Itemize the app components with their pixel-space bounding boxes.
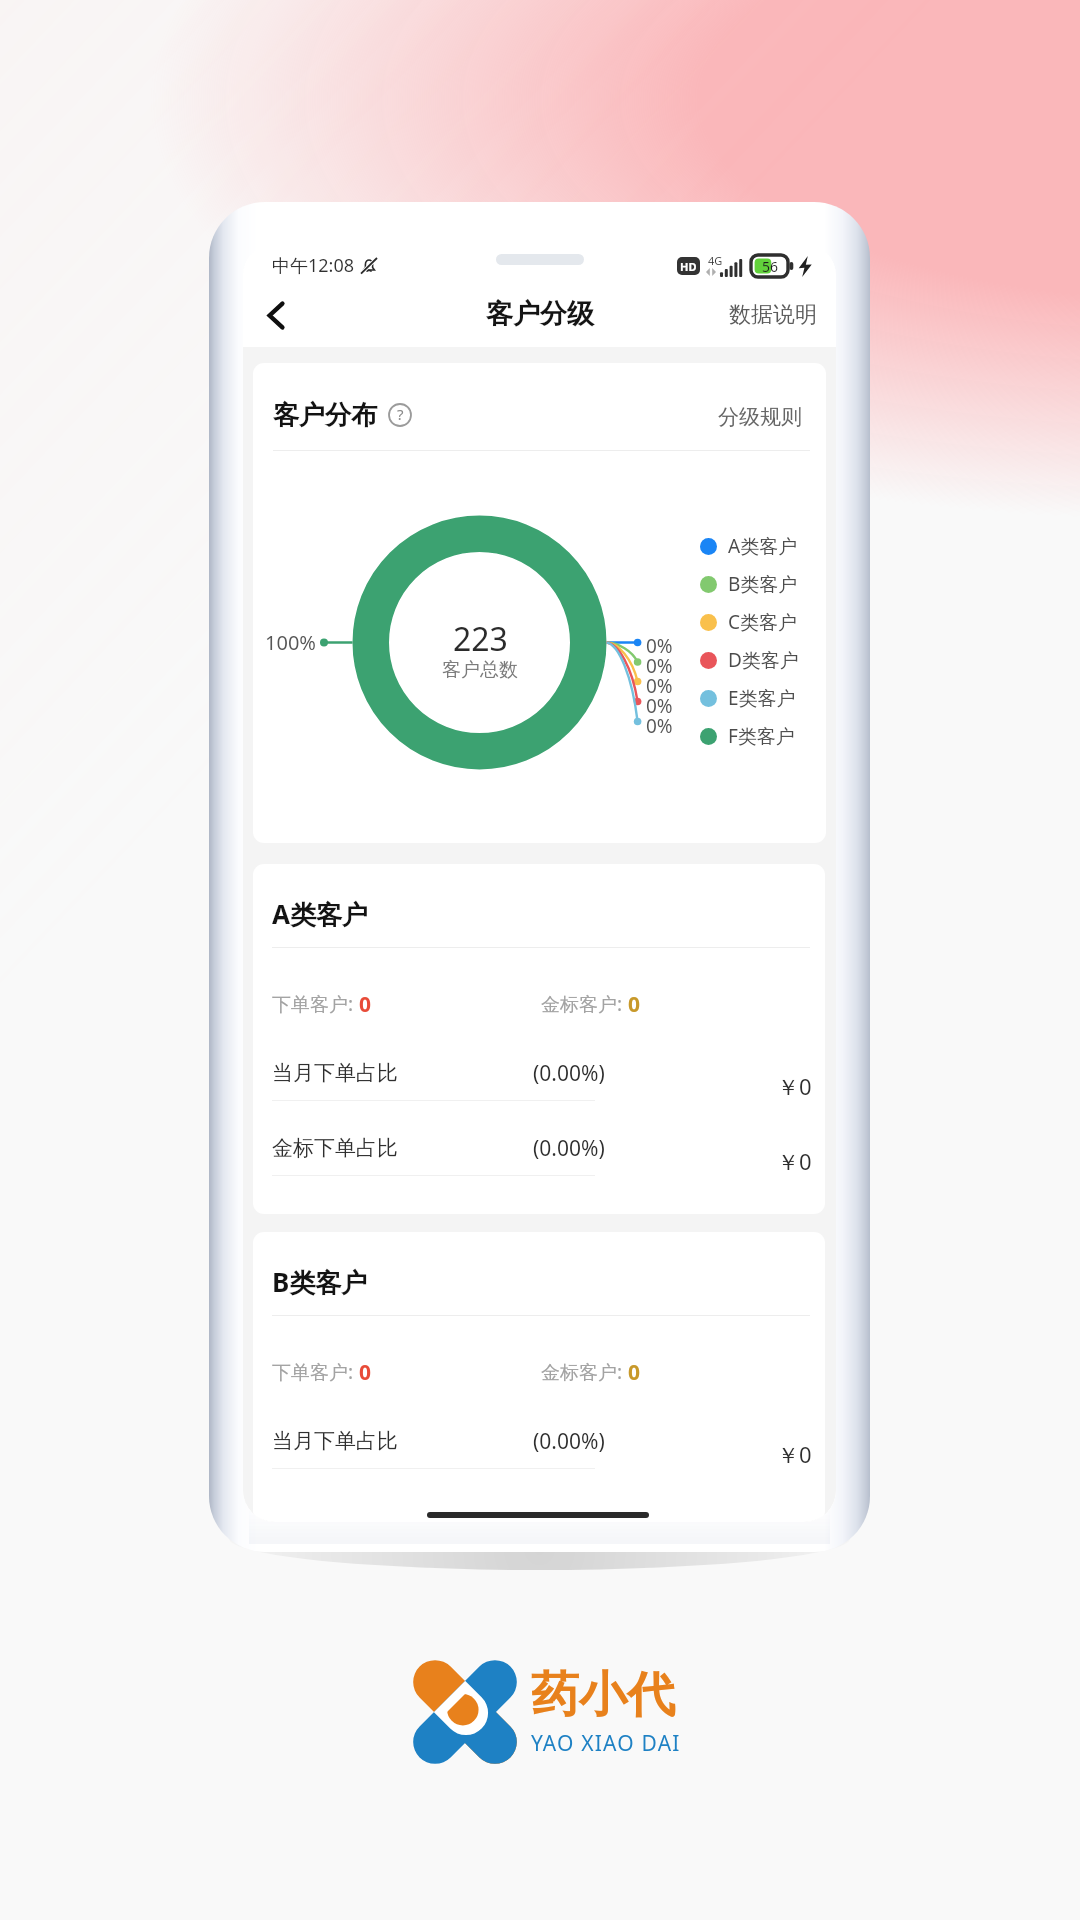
staticText: 金标客户: [541,1359,628,1385]
staticText: C类客户 [728,609,798,635]
staticText: 0 [359,990,372,1018]
staticText: 金标下单占比 [272,1135,398,1161]
staticText: YAO XIAO DAI [531,1729,681,1758]
staticText: 0% [646,633,673,653]
staticText: 下单客户: [272,991,359,1017]
button[interactable]: 规则说明 [386,401,414,429]
staticText: B类客户 [272,1264,368,1300]
staticText: 下单客户: [272,1359,359,1385]
staticText: 中午12:08 [272,253,355,278]
staticText: B类客户 [728,571,798,597]
staticText: 0% [646,693,673,713]
staticText: (0.00%) [533,1059,605,1088]
button[interactable]: 数据说明 [706,289,836,341]
staticText: 药小代 [531,1665,675,1725]
staticText: ￥0 [777,1146,812,1176]
staticText: 分级规则 [718,404,802,430]
staticText: A类客户 [728,533,798,559]
staticText: 56 [762,257,779,276]
staticText: 当月下单占比 [272,1060,398,1086]
staticText: (0.00%) [533,1134,605,1163]
staticText: 客户总数 [442,658,518,682]
staticText: 0% [646,673,673,693]
staticText: 0% [646,653,673,673]
staticText: ￥0 [777,1439,812,1469]
staticText: E类客户 [728,685,796,711]
staticText: ￥0 [777,1071,812,1101]
staticText: A类客户 [272,896,368,932]
staticText: 0 [628,990,641,1018]
staticText: (0.00%) [533,1427,605,1456]
staticText: ? [397,404,404,424]
staticText: 客户分布 [273,399,377,432]
staticText: 223 [453,617,508,661]
staticText: 0 [628,1358,641,1386]
button[interactable]: A类客户 [253,864,825,1214]
button[interactable]: 返回 [247,286,303,347]
staticText: 0% [646,713,673,733]
staticText: 100% [265,629,316,656]
staticText: F类客户 [728,723,795,749]
staticText: D类客户 [728,647,799,673]
staticText: HD [680,259,697,274]
staticText: 金标客户: [541,991,628,1017]
staticText: 0 [359,1358,372,1386]
button[interactable]: B类客户 [253,1232,825,1522]
staticText: 4G [708,253,723,268]
staticText: 数据说明 [729,301,817,329]
button[interactable]: 分级规则 [703,394,826,440]
staticText: 客户分级 [486,297,594,331]
staticText: 当月下单占比 [272,1428,398,1454]
